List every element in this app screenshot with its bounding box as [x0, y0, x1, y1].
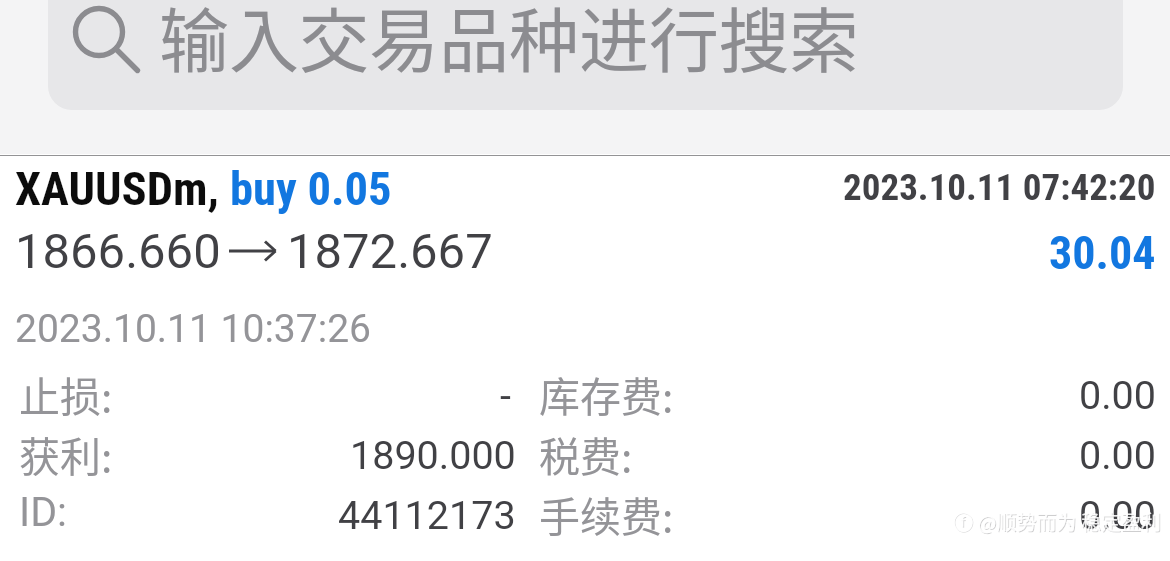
button[interactable]: Search — [48, 0, 1123, 110]
staticText: 止损: — [19, 364, 113, 420]
staticText: 44112173 — [338, 492, 516, 538]
staticText: ⓕ @顺势而为 稳定盈利 — [954, 508, 1162, 537]
staticText: 手续费: — [539, 484, 674, 540]
staticText: 0.00 — [1079, 372, 1157, 418]
staticText: 库存费: — [539, 364, 674, 420]
staticText: - — [500, 372, 511, 418]
staticText: 1866.660 — [15, 223, 221, 280]
staticText: 0.00 — [1079, 492, 1157, 538]
button[interactable]: XAUUSDm, — [0, 156, 1170, 561]
staticText: 税费: — [539, 424, 633, 480]
staticText: 1872.667 — [287, 223, 493, 280]
staticText: buy 0.05 — [230, 162, 392, 216]
staticText: 2023.10.11 10:37:26 — [15, 306, 371, 352]
staticText: 获利: — [19, 424, 113, 480]
staticText: 1890.000 — [350, 432, 516, 478]
staticText: 2023.10.11 07:42:20 — [843, 166, 1156, 209]
staticText: 30.04 — [1049, 226, 1156, 280]
staticText: ⓕ @顺势而为 稳定盈利 — [953, 507, 1161, 536]
staticText: 输入交易品种进行搜索 — [159, 0, 859, 87]
staticText: ID: — [19, 488, 67, 536]
staticText: 0.00 — [1079, 432, 1157, 478]
other: Search — [48, 0, 1123, 110]
staticText: XAUUSDm, — [15, 162, 230, 216]
